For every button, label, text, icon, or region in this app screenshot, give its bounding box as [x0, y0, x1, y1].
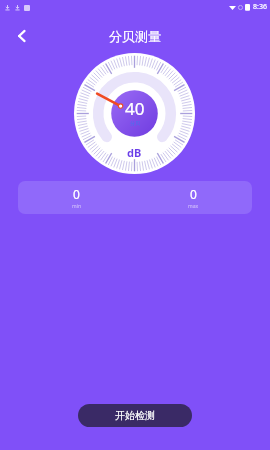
staticText: min — [72, 203, 82, 210]
button[interactable]: 0 — [18, 181, 252, 214]
staticText: max — [188, 203, 199, 210]
staticText: 8:36 — [253, 2, 267, 12]
staticText: 开始检测 — [115, 409, 155, 422]
staticText: 0 — [73, 186, 80, 202]
button[interactable]: Back — [6, 20, 38, 52]
staticText: 0 — [190, 186, 197, 202]
button[interactable]: 开始检测 — [78, 404, 192, 427]
staticText: dB — [127, 145, 142, 160]
staticText: 分贝测量 — [109, 28, 161, 44]
staticText: 分贝 — [130, 120, 140, 126]
staticText: 40 — [125, 97, 145, 120]
